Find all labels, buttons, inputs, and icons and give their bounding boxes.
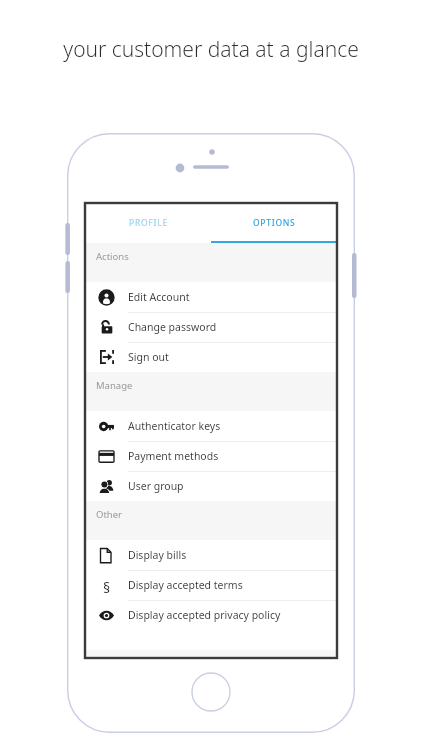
button[interactable]: Sign out xyxy=(85,342,337,372)
button[interactable]: PROFILE xyxy=(85,203,211,243)
staticText: Actions xyxy=(96,250,129,263)
other: Edit Account xyxy=(99,290,114,305)
staticText: Display accepted terms xyxy=(128,578,243,592)
button[interactable]: Display accepted privacy policy xyxy=(85,600,337,630)
button[interactable]: Edit Account xyxy=(85,282,337,312)
staticText: Display accepted privacy policy xyxy=(128,608,281,622)
staticText: Display bills xyxy=(128,548,187,562)
button[interactable]: Display accepted terms xyxy=(85,570,337,600)
other: User group xyxy=(99,479,114,494)
button[interactable]: OPTIONS xyxy=(211,203,337,243)
staticText: Edit Account xyxy=(128,290,190,304)
other: Payment methods xyxy=(99,449,114,464)
staticText: Payment methods xyxy=(128,449,219,463)
staticText: OPTIONS xyxy=(253,217,296,229)
other: Display accepted privacy policy xyxy=(99,608,114,623)
staticText: Authenticator keys xyxy=(128,419,221,433)
other: Change password xyxy=(100,320,114,334)
staticText: User group xyxy=(128,479,184,493)
staticText: your customer data at a glance xyxy=(0,35,422,64)
button[interactable]: Payment methods xyxy=(85,441,337,471)
staticText: § xyxy=(103,578,111,593)
button[interactable]: Authenticator keys xyxy=(85,411,337,441)
other: Sign out xyxy=(100,350,114,364)
staticText: Other xyxy=(96,508,123,521)
other: Display accepted terms xyxy=(99,578,114,593)
staticText: PROFILE xyxy=(129,217,168,229)
staticText: Sign out xyxy=(128,350,169,364)
staticText: Change password xyxy=(128,320,217,334)
button[interactable]: Change password xyxy=(85,312,337,342)
other: Authenticator keys xyxy=(99,419,114,434)
staticText: Manage xyxy=(96,379,133,392)
button[interactable]: User group xyxy=(85,471,337,501)
button[interactable]: Display bills xyxy=(85,540,337,570)
other: Display bills xyxy=(99,548,114,563)
